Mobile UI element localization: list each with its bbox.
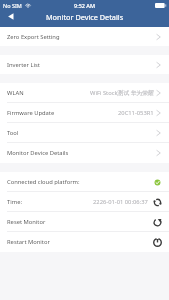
- button[interactable]: Restart Monitor: [0, 232, 169, 252]
- staticText: Restart Monitor: [7, 238, 50, 246]
- staticText: Tool: [7, 129, 19, 137]
- staticText: No SIM: [3, 2, 22, 9]
- staticText: Inverter List: [7, 61, 40, 69]
- button[interactable]: Back: [0, 11, 22, 27]
- staticText: Zero Export Setting: [7, 33, 60, 41]
- button[interactable]: Tool: [0, 123, 169, 143]
- staticText: 2226-01-01 00:06:37: [93, 198, 148, 206]
- button[interactable]: Inverter List: [0, 55, 169, 74]
- staticText: Monitor Device Details: [7, 149, 69, 157]
- staticText: 9:52 AM: [74, 2, 96, 9]
- staticText: 20C11-053R1: [118, 109, 154, 117]
- staticText: Connected cloud platform:: [7, 178, 80, 186]
- staticText: Reset Monitor: [7, 218, 46, 226]
- button[interactable]: Firmware Update: [0, 103, 169, 123]
- button[interactable]: Connected cloud platform:: [0, 172, 169, 192]
- button[interactable]: Time:: [0, 192, 169, 212]
- button[interactable]: WLAN: [0, 83, 169, 103]
- button[interactable]: Reset Monitor: [0, 212, 169, 232]
- staticText: WLAN: [7, 89, 24, 97]
- button[interactable]: Monitor Device Details: [0, 143, 169, 163]
- staticText: WiFi Stock测试 华为荣耀: [90, 89, 154, 97]
- staticText: Firmware Update: [7, 109, 55, 117]
- staticText: Monitor Device Details: [46, 12, 124, 22]
- button[interactable]: Zero Export Setting: [0, 27, 169, 46]
- staticText: Time:: [7, 198, 22, 206]
